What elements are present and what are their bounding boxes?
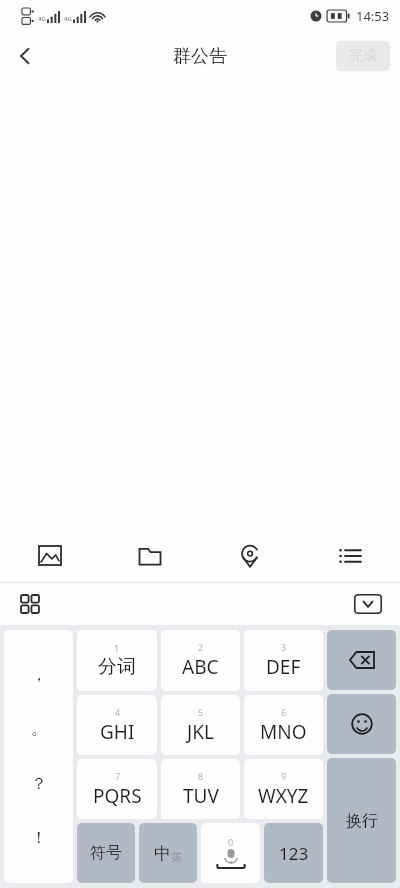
staticText: JKL <box>187 719 214 745</box>
staticText: 8 <box>198 770 204 782</box>
staticText: WXYZ <box>258 783 309 809</box>
staticText: TUV <box>183 783 219 809</box>
button[interactable]: 符号 <box>77 823 135 883</box>
staticText: 符号 <box>90 843 122 863</box>
button[interactable]: Emoji <box>327 694 396 754</box>
staticText: DEF <box>266 654 301 680</box>
button[interactable]: 0 <box>201 823 260 883</box>
button[interactable]: 123 <box>264 823 323 883</box>
staticText: ABC <box>182 654 219 680</box>
button[interactable]: ， <box>4 630 73 883</box>
button[interactable]: Hide keyboard <box>350 586 386 622</box>
button[interactable]: 1 <box>77 630 157 691</box>
button[interactable]: Bulleted list <box>300 530 400 582</box>
staticText: ？ <box>31 774 47 794</box>
staticText: 4 <box>115 706 121 718</box>
staticText: 14:53 <box>356 7 390 25</box>
staticText: 0 <box>228 836 234 848</box>
button[interactable]: Add location <box>200 530 300 582</box>
button[interactable]: 9 <box>244 759 323 819</box>
staticText: 群公告 <box>173 45 227 68</box>
button[interactable]: 8 <box>161 759 240 819</box>
staticText: 123 <box>279 842 309 865</box>
button[interactable]: Backspace <box>327 630 396 690</box>
staticText: 完成 <box>349 47 377 65</box>
staticText: PQRS <box>93 783 142 809</box>
button[interactable]: 2 <box>161 630 240 691</box>
staticText: 分词 <box>98 655 136 679</box>
staticText: MNO <box>260 719 307 745</box>
staticText: 9 <box>281 770 287 782</box>
button[interactable]: 4 <box>77 695 157 755</box>
staticText: 5 <box>198 706 204 718</box>
button[interactable]: Keyboard layouts <box>14 588 46 620</box>
button[interactable]: 完成 <box>336 41 390 71</box>
staticText: ， <box>31 665 47 685</box>
button[interactable]: 3 <box>244 630 323 691</box>
staticText: 4G <box>38 15 46 23</box>
button[interactable]: 换行 <box>327 758 396 883</box>
button[interactable]: 7 <box>77 759 157 819</box>
staticText: 中 <box>154 843 171 864</box>
staticText: 3 <box>281 641 287 653</box>
button[interactable]: Back <box>2 33 48 79</box>
staticText: 英 <box>171 850 182 864</box>
staticText: 2 <box>198 641 204 653</box>
staticText: 换行 <box>346 811 378 831</box>
staticText: GHI <box>100 719 135 745</box>
staticText: 。 <box>31 719 47 739</box>
staticText: 7 <box>115 770 121 782</box>
button[interactable]: 6 <box>244 695 323 755</box>
button[interactable]: Open folder <box>100 530 200 582</box>
button[interactable]: 5 <box>161 695 240 755</box>
staticText: 4G <box>64 15 72 23</box>
staticText: 6 <box>281 706 287 718</box>
button[interactable]: 中 <box>139 823 197 883</box>
staticText: ！ <box>31 828 47 848</box>
button[interactable]: Insert image <box>0 530 100 582</box>
staticText: 1 <box>114 642 120 654</box>
